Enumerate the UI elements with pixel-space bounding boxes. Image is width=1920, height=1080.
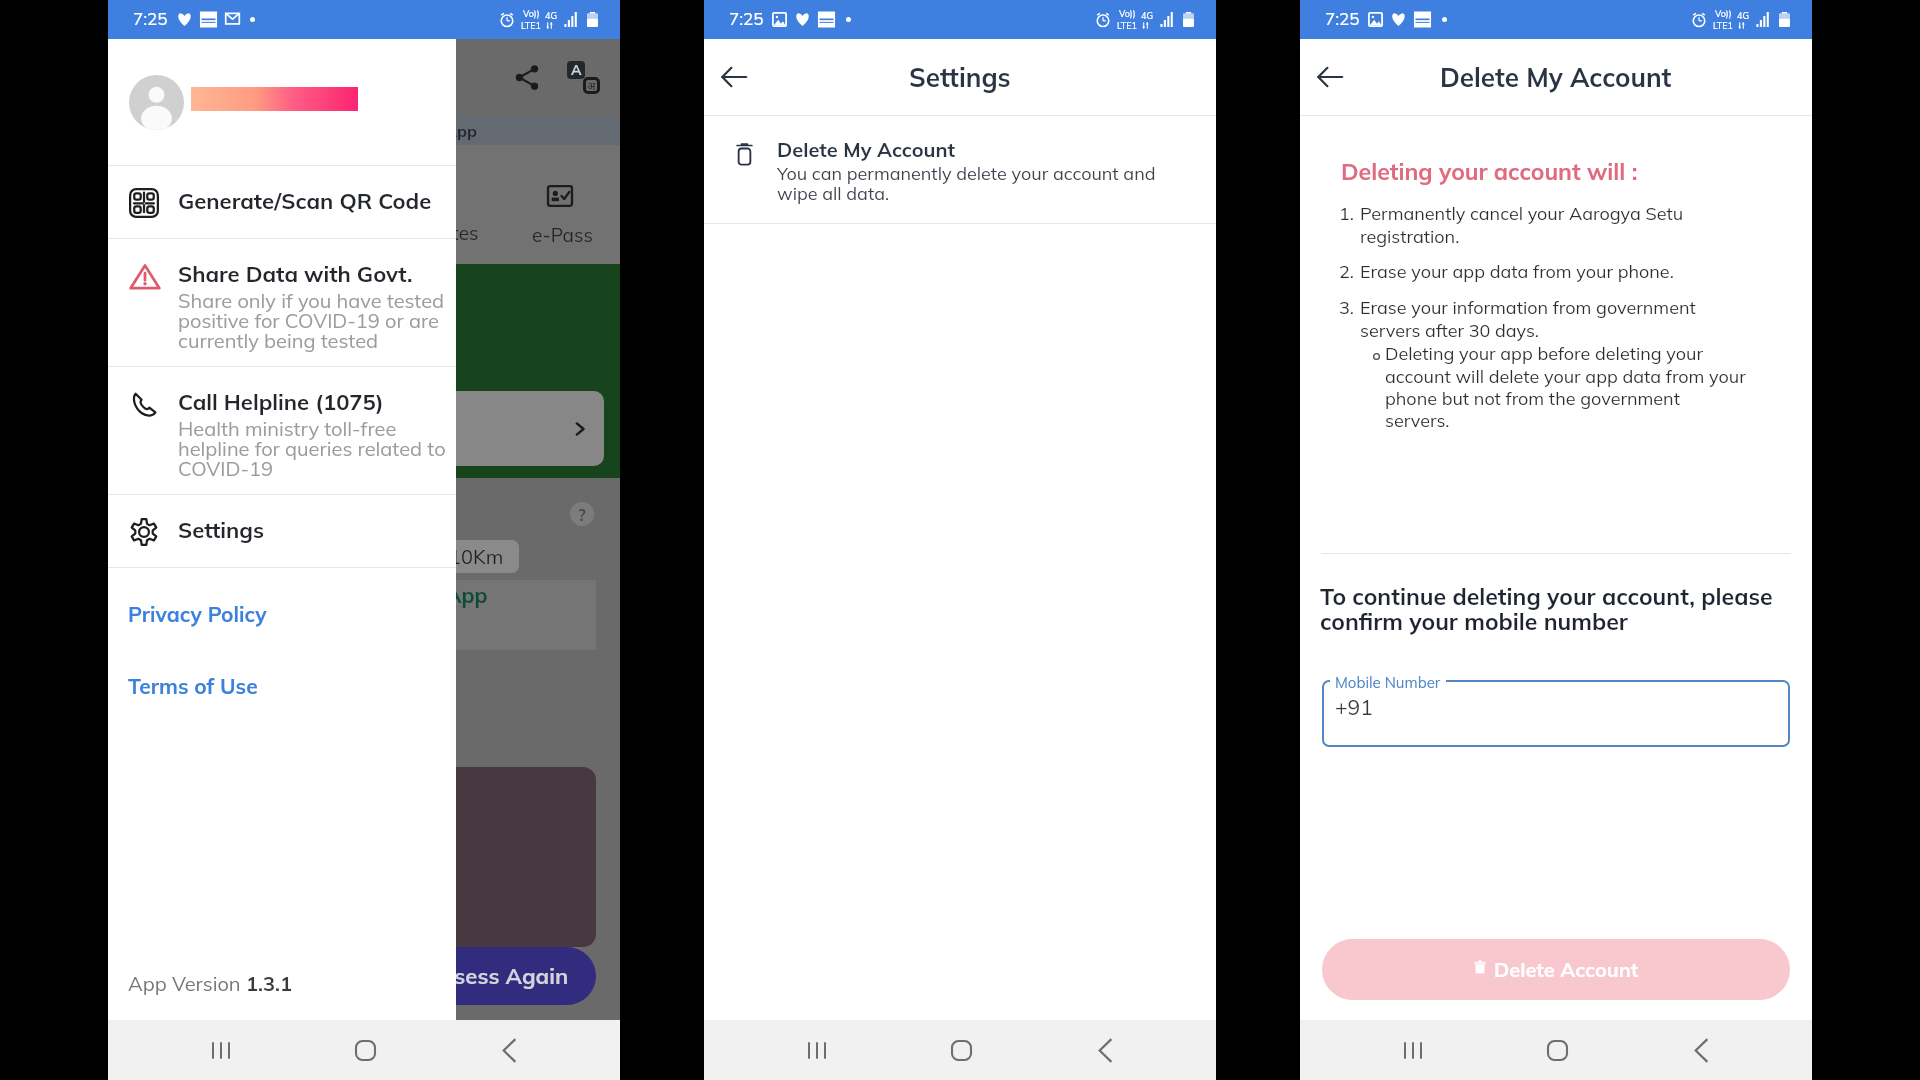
button[interactable]: Home xyxy=(937,1026,985,1074)
button[interactable]: Terms of Use xyxy=(108,667,456,705)
staticText: LTE1 xyxy=(1713,20,1733,31)
staticText: +91 xyxy=(1335,694,1373,720)
staticText: Erase your app data from your phone. xyxy=(1360,260,1674,283)
staticText: App xyxy=(445,121,477,141)
button[interactable]: Back xyxy=(1081,1026,1129,1074)
button[interactable]: Back xyxy=(485,1026,533,1074)
staticText: Deleting your account will : xyxy=(1341,157,1638,186)
staticText: Delete My Account xyxy=(1440,61,1672,94)
staticText: Delete My Account xyxy=(777,137,956,162)
staticText: LTE1 xyxy=(1117,20,1137,31)
button[interactable]: Recent apps xyxy=(197,1026,245,1074)
staticText: Assess Again xyxy=(427,962,569,990)
staticText: अ xyxy=(587,78,596,93)
staticText: Updates xyxy=(404,221,479,245)
staticText: Erase your information from government s… xyxy=(1360,296,1696,341)
staticText: 1. xyxy=(1339,202,1354,225)
button[interactable]: Home xyxy=(341,1026,389,1074)
staticText: Share Data with Govt. xyxy=(178,260,413,288)
staticText: Generate/Scan QR Code xyxy=(178,187,432,215)
staticText: 7:25 xyxy=(729,8,764,29)
button[interactable]: Delete Account xyxy=(1322,939,1790,1000)
staticText: Health ministry toll-free helpline for q… xyxy=(178,416,446,481)
staticText: App Version xyxy=(128,971,246,996)
button[interactable]: Back xyxy=(1307,54,1353,100)
staticText: 4G xyxy=(1141,10,1153,21)
staticText: Vo)) xyxy=(1119,8,1136,19)
staticText: e-Pass xyxy=(532,223,593,247)
staticText: 3. xyxy=(1339,296,1354,319)
button[interactable]: Home xyxy=(1533,1026,1581,1074)
staticText: Deleting your app before deleting your a… xyxy=(1385,342,1746,431)
staticText: Permanently cancel your Aarogya Setu reg… xyxy=(1360,202,1684,247)
button[interactable]: Privacy Policy xyxy=(108,595,456,633)
staticText: Privacy Policy xyxy=(128,601,267,627)
button[interactable]: Delete My Account xyxy=(704,116,1216,223)
staticText: A xyxy=(571,61,582,79)
staticText: Settings xyxy=(909,61,1011,94)
staticText: Share only if you have tested positive f… xyxy=(178,288,445,353)
button[interactable]: Generate/Scan QR Code xyxy=(108,166,456,238)
staticText: etu App xyxy=(408,582,488,608)
staticText: Delete Account xyxy=(1494,957,1639,982)
staticText: ? xyxy=(578,504,586,525)
staticText: 4G xyxy=(1737,10,1749,21)
staticText: 7:25 xyxy=(1325,8,1360,29)
staticText: Settings xyxy=(178,516,264,544)
staticText: 7:25 xyxy=(133,8,168,29)
staticText: You can permanently delete your account … xyxy=(777,162,1156,205)
staticText: 4G xyxy=(545,10,557,21)
staticText: Vo)) xyxy=(1715,8,1732,19)
staticText: 1.3.1 xyxy=(246,971,292,996)
button[interactable]: Share Data with Govt. xyxy=(108,239,456,366)
staticText: To continue deleting your account, pleas… xyxy=(1320,582,1773,636)
button[interactable]: Back xyxy=(1677,1026,1725,1074)
button[interactable]: Back xyxy=(711,54,757,100)
button[interactable]: Settings xyxy=(108,495,456,567)
staticText: Terms of Use xyxy=(128,673,258,699)
button[interactable]: Call Helpline (1075) xyxy=(108,367,456,494)
staticText: Vo)) xyxy=(523,8,540,19)
button[interactable]: Recent apps xyxy=(793,1026,841,1074)
staticText: 2. xyxy=(1339,260,1354,283)
staticText: Call Helpline (1075) xyxy=(178,388,384,416)
staticText: Mobile Number xyxy=(1335,673,1441,692)
staticText: 10Km xyxy=(449,544,504,569)
staticText: LTE1 xyxy=(521,20,541,31)
button[interactable]: Recent apps xyxy=(1389,1026,1437,1074)
